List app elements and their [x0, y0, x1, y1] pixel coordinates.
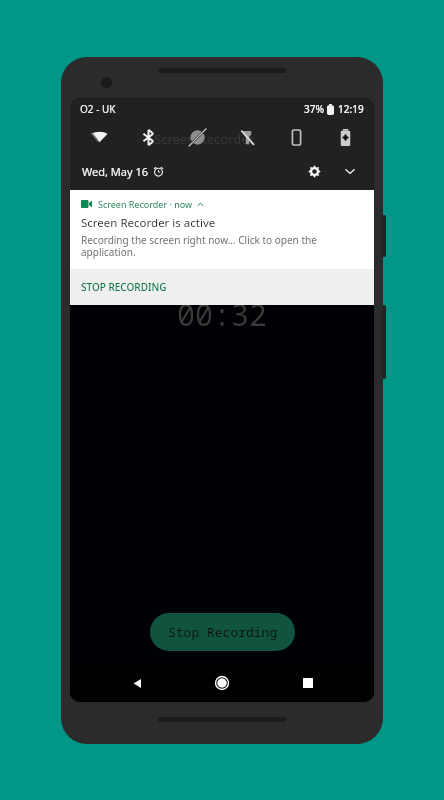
staticText: Screen Recorder · now	[98, 198, 193, 210]
button[interactable]: Expand	[338, 159, 362, 183]
button[interactable]: Battery saver	[332, 124, 358, 150]
staticText: 12:19	[338, 102, 364, 116]
staticText: STOP RECORDING	[81, 280, 167, 294]
staticText: Stop Recording	[168, 623, 278, 641]
button[interactable]: Stop Recording	[150, 613, 295, 651]
button[interactable]: Settings	[302, 159, 326, 183]
staticText: O2 - UK	[80, 102, 116, 116]
button[interactable]: STOP RECORDING	[70, 269, 374, 305]
staticText: Recording the screen right now... Click …	[81, 233, 363, 259]
button[interactable]: Flashlight	[234, 124, 260, 150]
staticText: Wed, May 16	[82, 164, 148, 179]
button[interactable]: Auto rotate	[283, 124, 309, 150]
staticText: Screen Recorder	[154, 130, 254, 148]
button[interactable]: Wi-Fi	[86, 124, 112, 150]
staticText: Screen Recorder is active	[81, 215, 216, 231]
button[interactable]: Do not disturb	[184, 124, 210, 150]
staticText: 37%	[304, 102, 324, 116]
button[interactable]: Recent apps	[289, 664, 327, 702]
button[interactable]: Bluetooth	[135, 124, 161, 150]
button[interactable]: Screen Recorder · now	[70, 190, 374, 269]
button[interactable]: Home	[203, 664, 241, 702]
staticText: 00:32	[177, 294, 267, 335]
button[interactable]: Back	[118, 664, 156, 702]
